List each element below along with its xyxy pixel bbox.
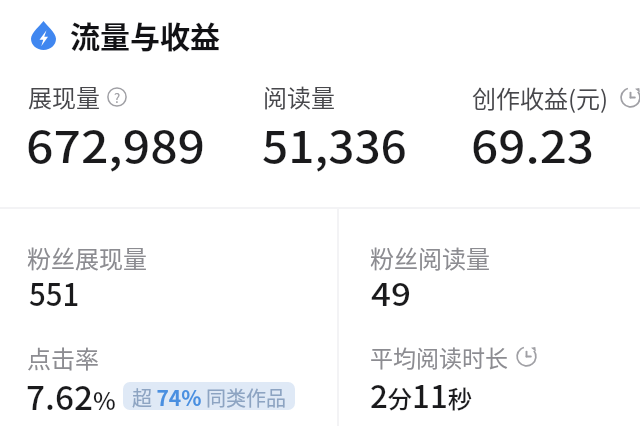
staticText: 2分11秒 (370, 372, 473, 417)
staticText: 点击率 (27, 340, 99, 375)
button[interactable]: History (516, 346, 537, 367)
staticText: 平均阅读时长 (370, 340, 508, 373)
staticText: 粉丝阅读量 (370, 240, 490, 275)
staticText: 超 74% 同类作品 (132, 382, 286, 410)
staticText: 7.62% (26, 372, 116, 420)
staticText: 551 (29, 270, 80, 315)
staticText: 创作收益(元) (472, 80, 609, 115)
button[interactable]: Help (107, 87, 127, 107)
button[interactable]: 超 74% 同类作品 (123, 382, 295, 410)
staticText: 672,989 (26, 113, 205, 175)
staticText: 49 (371, 270, 412, 315)
button[interactable]: History (620, 87, 640, 108)
staticText: 展现量 (28, 79, 100, 114)
staticText: ? (114, 88, 121, 107)
staticText: 粉丝展现量 (27, 240, 147, 275)
staticText: 流量与收益 (70, 13, 220, 56)
staticText: 51,336 (262, 113, 407, 175)
staticText: 阅读量 (263, 79, 335, 114)
staticText: 69.23 (471, 113, 594, 175)
button[interactable]: 流量与收益 (31, 13, 220, 56)
